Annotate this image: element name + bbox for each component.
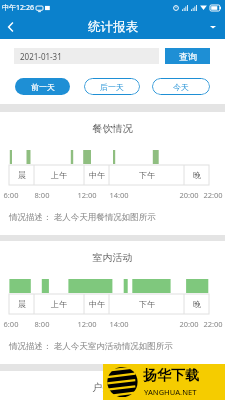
staticText: 中午 bbox=[83, 170, 111, 180]
staticText: 情况描述： 老人今天室内活动情况如图所示 bbox=[9, 340, 173, 352]
staticText: 户外活动 bbox=[0, 381, 225, 394]
button[interactable]: 前一天 bbox=[15, 78, 70, 95]
staticText: 14:00 bbox=[105, 190, 133, 200]
staticText: 2021-01-31 bbox=[20, 51, 62, 62]
staticText: 前一天 bbox=[31, 82, 55, 92]
staticText: 12:00 bbox=[73, 319, 101, 329]
staticText: 下午 bbox=[133, 299, 161, 309]
staticText: 情况描述： 老人今天用餐情况如图所示 bbox=[9, 211, 156, 223]
staticText: 晚 bbox=[183, 170, 211, 180]
staticText: 上午 bbox=[45, 299, 73, 309]
staticText: 后一天 bbox=[100, 82, 124, 92]
staticText: 上午 bbox=[45, 170, 73, 180]
staticText: 晨 bbox=[8, 170, 36, 180]
staticText: 今天 bbox=[173, 82, 189, 92]
staticText: 22:00 bbox=[199, 190, 225, 200]
staticText: 20:00 bbox=[175, 319, 203, 329]
staticText: 查询 bbox=[179, 51, 197, 62]
staticText: 6:00 bbox=[0, 319, 25, 329]
button[interactable]: 后一天 bbox=[84, 78, 140, 95]
staticText: 中午12:26 bbox=[2, 3, 34, 13]
staticText: 8:00 bbox=[28, 319, 56, 329]
button[interactable]: 返回 bbox=[0, 15, 22, 39]
staticText: 22:00 bbox=[199, 319, 225, 329]
staticText: YANGHUA.NET bbox=[144, 387, 197, 397]
staticText: 晚 bbox=[183, 299, 211, 309]
staticText: 餐饮情况 bbox=[0, 122, 225, 135]
button[interactable]: 今天 bbox=[152, 78, 210, 95]
staticText: 8:00 bbox=[28, 190, 56, 200]
button[interactable]: 查询 bbox=[165, 48, 210, 64]
staticText: 中午 bbox=[83, 299, 111, 309]
staticText: 室内活动 bbox=[0, 251, 225, 264]
staticText: 晨 bbox=[8, 299, 36, 309]
staticText: 20:00 bbox=[175, 190, 203, 200]
staticText: 扬华下载 bbox=[143, 367, 199, 385]
button[interactable]: 更多 bbox=[201, 15, 225, 39]
staticText: 统计报表 bbox=[88, 19, 138, 35]
button[interactable]: 2021-01-31 bbox=[14, 48, 159, 64]
staticText: 14:00 bbox=[105, 319, 133, 329]
staticText: 下午 bbox=[133, 170, 161, 180]
staticText: 12:00 bbox=[73, 190, 101, 200]
staticText: 6:00 bbox=[0, 190, 25, 200]
